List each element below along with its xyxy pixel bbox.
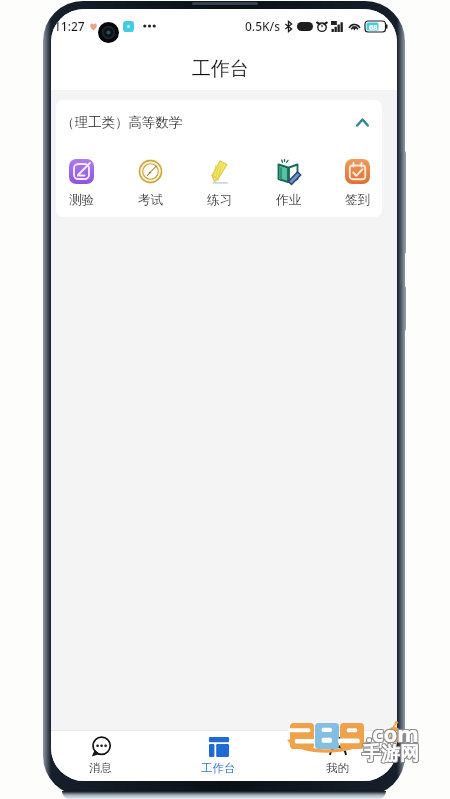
staticText: 考试 <box>138 192 163 208</box>
staticText: 工作台 <box>192 57 249 81</box>
staticText: .com <box>367 717 420 747</box>
staticText: 手游网 <box>363 741 420 765</box>
button[interactable]: （理工类）高等数学 <box>56 100 382 145</box>
button[interactable]: 消息 <box>68 731 132 781</box>
staticText: 手游网 <box>361 741 418 765</box>
staticText: 手游网 <box>363 742 420 766</box>
staticText: 0.5K/s <box>245 18 281 34</box>
staticText: 我的 <box>326 761 349 775</box>
staticText: 68 <box>369 22 378 32</box>
button[interactable]: 作业 <box>267 145 309 208</box>
staticText: 签到 <box>345 192 370 208</box>
staticText: .com <box>365 717 418 747</box>
button[interactable]: 测验 <box>60 145 102 208</box>
button[interactable]: 工作台 <box>186 731 250 781</box>
staticText: .com <box>366 717 419 747</box>
staticText: 工作台 <box>201 761 236 775</box>
button[interactable]: 练习 <box>198 145 240 208</box>
button[interactable]: 考试 <box>129 145 171 208</box>
staticText: 练习 <box>207 192 232 208</box>
staticText: 作业 <box>276 192 301 208</box>
staticText: 手游网 <box>361 742 418 766</box>
staticText: .com <box>365 719 418 749</box>
staticText: 消息 <box>89 761 112 775</box>
staticText: 测验 <box>69 192 94 208</box>
staticText: .com <box>366 719 419 749</box>
staticText: 手游网 <box>362 741 419 765</box>
staticText: 11:27 <box>54 18 85 34</box>
staticText: 手游网 <box>363 743 420 767</box>
button[interactable]: 我的 <box>305 731 369 781</box>
staticText: .com <box>367 718 420 748</box>
staticText: .com <box>365 718 418 748</box>
staticText: .com <box>366 718 419 748</box>
staticText: 手游网 <box>362 743 419 767</box>
staticText: （理工类）高等数学 <box>61 114 183 131</box>
other: 收起 <box>356 118 369 127</box>
staticText: 手游网 <box>362 742 419 766</box>
staticText: 手游网 <box>361 743 418 767</box>
staticText: .com <box>367 719 420 749</box>
button[interactable]: 签到 <box>336 145 378 208</box>
